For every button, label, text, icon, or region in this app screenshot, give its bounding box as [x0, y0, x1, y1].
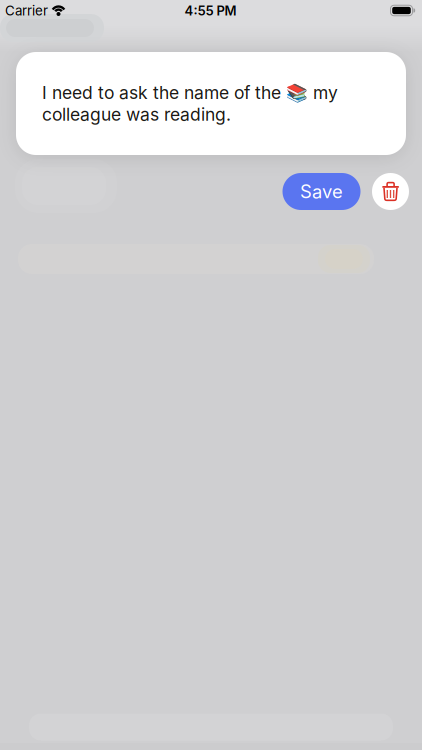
textField[interactable]: I need to ask the name of the 📚 my colle… — [42, 82, 392, 125]
button[interactable]: Save — [282, 173, 360, 210]
staticText: Save — [300, 180, 343, 203]
button[interactable]: Delete — [372, 173, 409, 210]
staticText: 4:55 PM — [184, 3, 236, 19]
staticText: I need to ask the name of the 📚 my colle… — [42, 82, 338, 125]
staticText: Carrier — [5, 3, 48, 19]
